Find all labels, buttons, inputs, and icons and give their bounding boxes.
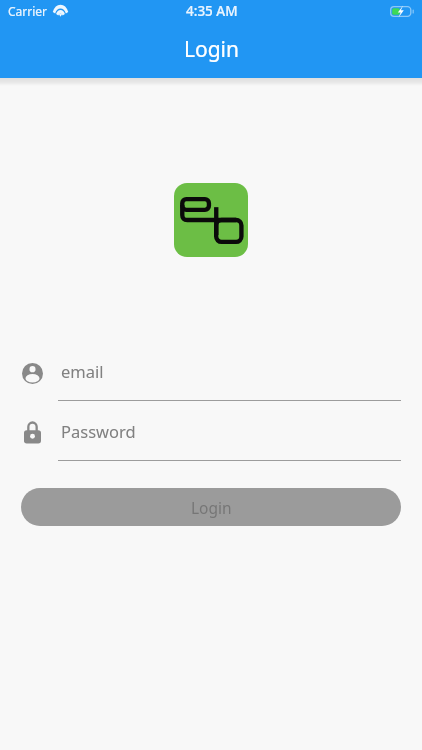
- staticText: Login: [184, 35, 240, 64]
- staticText: Login: [191, 497, 232, 518]
- staticText: Password: [61, 420, 136, 442]
- button[interactable]: Login: [21, 488, 401, 526]
- staticText: 4:35 AM: [186, 2, 238, 20]
- staticText: email: [61, 360, 104, 382]
- staticText: Carrier: [8, 3, 48, 19]
